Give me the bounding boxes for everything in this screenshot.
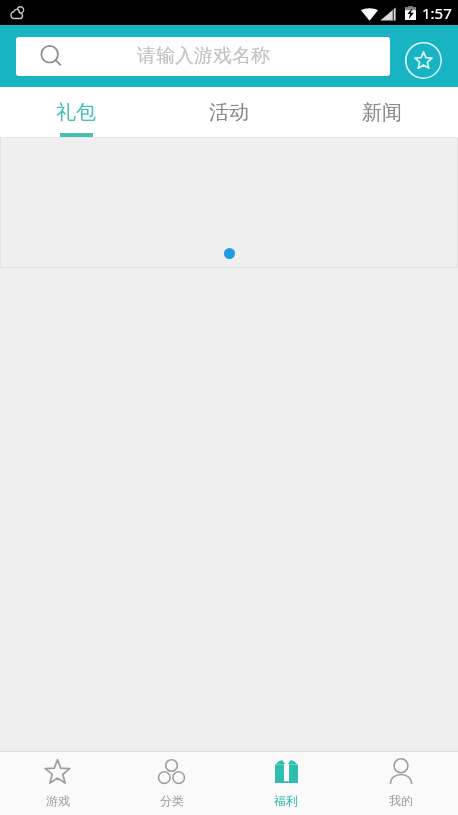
staticText: 请输入游戏名称 [137, 44, 270, 68]
button[interactable]: 活动 [152, 87, 305, 137]
staticText: 活动 [209, 100, 249, 125]
staticText: 福利 [274, 793, 298, 808]
staticText: 我的 [389, 793, 413, 808]
button[interactable]: Mine [343, 751, 458, 815]
button[interactable]: 礼包 [0, 87, 152, 137]
button[interactable]: My favorites [404, 41, 442, 79]
staticText: 游戏 [46, 793, 70, 808]
button[interactable]: Benefits [228, 751, 343, 815]
button[interactable]: Games [0, 751, 114, 815]
staticText: 新闻 [362, 100, 402, 125]
staticText: 礼包 [56, 100, 96, 125]
staticText: 分类 [160, 793, 184, 808]
button[interactable]: 请输入游戏名称 [16, 37, 390, 76]
staticText: 1:57 [422, 3, 452, 23]
button[interactable]: Categories [114, 751, 228, 815]
button[interactable]: 新闻 [305, 87, 458, 137]
